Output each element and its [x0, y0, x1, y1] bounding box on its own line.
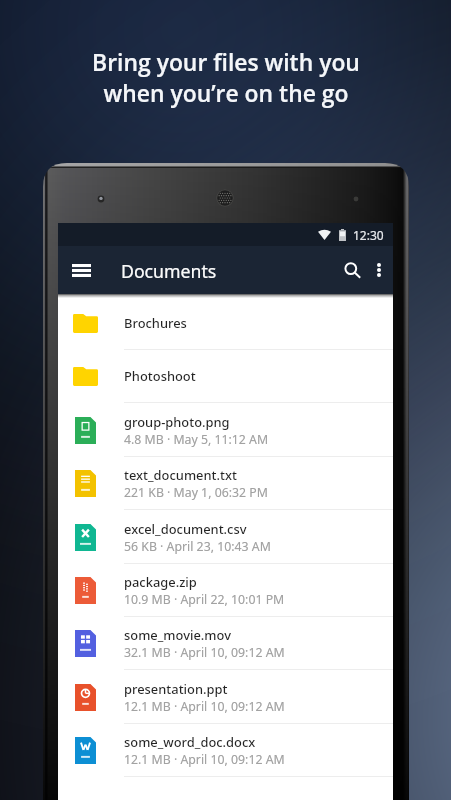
staticText: some_movie.mov [124, 626, 231, 644]
button[interactable]: some_movie.mov [58, 617, 393, 670]
staticText: presentation.ppt [124, 680, 228, 698]
staticText: 12.1 MB · April 10, 09:12 AM [124, 751, 285, 768]
button[interactable]: excel_document.csv [58, 511, 393, 564]
staticText: excel_document.csv [124, 520, 247, 538]
button[interactable]: Photoshoot [58, 350, 393, 403]
staticText: 221 KB · May 1, 06:32 PM [124, 484, 268, 501]
button[interactable]: More options [365, 251, 393, 289]
button[interactable]: some_word_doc.docx [58, 724, 393, 777]
button[interactable]: presentation.ppt [58, 671, 393, 724]
staticText: Bring your files with you when you’re on… [92, 47, 360, 109]
button[interactable]: text_document.txt [58, 457, 393, 510]
staticText: 12:30 [353, 227, 384, 243]
staticText: package.zip [124, 573, 197, 591]
staticText: 56 KB · April 23, 10:43 AM [124, 538, 271, 555]
staticText: text_document.txt [124, 466, 237, 484]
staticText: 4.8 MB · May 5, 11:12 AM [124, 431, 269, 448]
staticText: Documents [121, 259, 217, 283]
staticText: 10.9 MB · April 22, 10:01 PM [124, 591, 285, 608]
staticText: Photoshoot [124, 367, 196, 385]
button[interactable]: Brochures [58, 297, 393, 350]
staticText: 12.1 MB · April 10, 09:12 AM [124, 698, 285, 715]
staticText: some_word_doc.docx [124, 733, 256, 751]
button[interactable]: Search [334, 251, 370, 289]
staticText: Brochures [124, 314, 187, 332]
button[interactable]: group-photo.png [58, 404, 393, 457]
staticText: group-photo.png [124, 413, 230, 431]
button[interactable]: package.zip [58, 564, 393, 617]
staticText: 32.1 MB · April 10, 09:12 AM [124, 644, 285, 661]
button[interactable]: Open navigation drawer [62, 251, 101, 289]
